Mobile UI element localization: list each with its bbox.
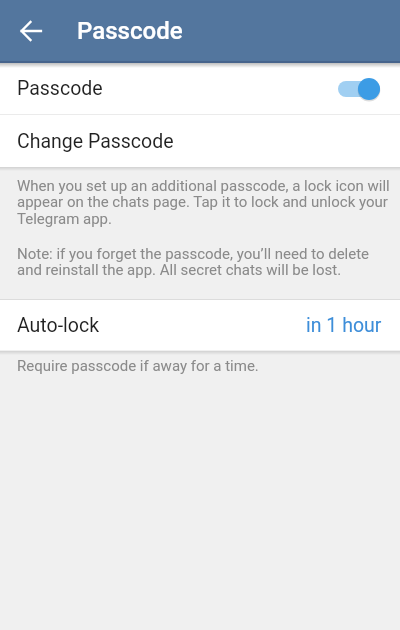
staticText: Passcode	[77, 17, 183, 45]
staticText: Auto-lock	[17, 314, 100, 337]
button[interactable]	[0, 0, 61, 61]
staticText: in 1 hour	[306, 314, 382, 337]
staticText: Change Passcode	[17, 130, 174, 153]
button[interactable]: Auto-lock	[0, 300, 400, 350]
button[interactable]: Change Passcode	[0, 115, 400, 167]
staticText: When you set up an additional passcode, …	[17, 177, 390, 228]
button[interactable]	[338, 77, 380, 101]
staticText: Passcode	[17, 77, 103, 100]
staticText: Require passcode if away for a time.	[17, 357, 259, 375]
staticText: Note: if you forget the passcode, you’ll…	[17, 245, 370, 279]
button[interactable]: Passcode	[0, 63, 400, 114]
